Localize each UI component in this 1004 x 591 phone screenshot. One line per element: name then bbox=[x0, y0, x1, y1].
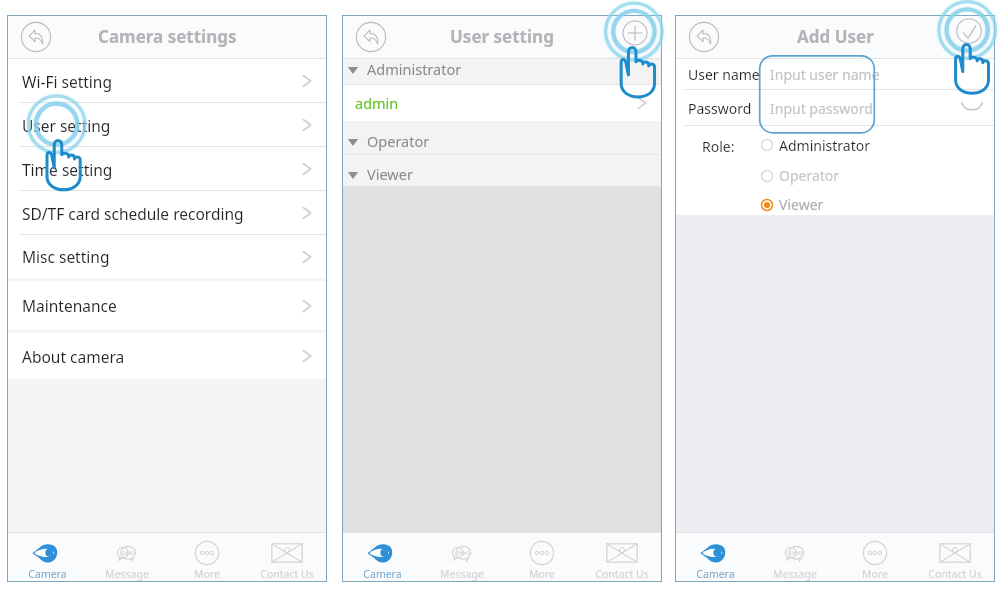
button[interactable]: Back bbox=[18, 19, 54, 55]
staticText: Administrator bbox=[367, 59, 462, 79]
button[interactable]: More bbox=[167, 533, 247, 582]
staticText: admin bbox=[355, 93, 399, 113]
staticText: Role: bbox=[702, 137, 735, 156]
staticText: Contact Us bbox=[260, 567, 314, 581]
button[interactable]: Misc setting bbox=[7, 235, 327, 278]
button[interactable]: More bbox=[502, 533, 582, 582]
staticText: Contact Us bbox=[928, 567, 982, 581]
staticText: User setting bbox=[22, 115, 111, 136]
staticText: Camera bbox=[363, 567, 402, 581]
staticText: Time setting bbox=[22, 159, 113, 180]
button[interactable]: Camera bbox=[7, 533, 87, 582]
button[interactable]: Maintenance bbox=[7, 281, 327, 330]
button[interactable]: Wi-Fi setting bbox=[7, 59, 327, 103]
button[interactable]: Message bbox=[755, 533, 835, 582]
staticText: Maintenance bbox=[22, 295, 117, 316]
staticText: Input user name bbox=[770, 65, 880, 84]
button[interactable]: Operator bbox=[760, 161, 840, 190]
staticText: Message bbox=[105, 567, 149, 581]
staticText: Input password bbox=[770, 99, 873, 118]
button[interactable]: Message bbox=[87, 533, 167, 582]
button[interactable]: Back bbox=[353, 19, 389, 55]
button[interactable]: Camera bbox=[342, 533, 422, 582]
staticText: About camera bbox=[22, 346, 125, 367]
staticText: Camera bbox=[28, 567, 67, 581]
button[interactable]: Viewer bbox=[760, 190, 824, 219]
staticText: Message bbox=[440, 567, 484, 581]
button[interactable]: Contact Us bbox=[247, 533, 327, 582]
button[interactable]: Contact Us bbox=[582, 533, 662, 582]
staticText: Camera settings bbox=[98, 25, 237, 48]
staticText: Viewer bbox=[367, 164, 413, 184]
button[interactable]: Add user bbox=[618, 16, 652, 50]
staticText: Camera bbox=[696, 567, 735, 581]
staticText: Wi-Fi setting bbox=[22, 71, 112, 92]
staticText: Password bbox=[688, 99, 752, 118]
button[interactable]: Viewer bbox=[342, 155, 662, 187]
button[interactable]: SD/TF card schedule recording bbox=[7, 191, 327, 235]
staticText: Misc setting bbox=[22, 246, 110, 267]
button[interactable]: Operator bbox=[342, 121, 662, 155]
button[interactable]: admin bbox=[342, 85, 662, 121]
staticText: More bbox=[529, 567, 555, 581]
staticText: Operator bbox=[779, 166, 840, 185]
staticText: Operator bbox=[367, 131, 430, 151]
staticText: User setting bbox=[450, 25, 554, 48]
staticText: Add User bbox=[797, 25, 874, 48]
button[interactable]: Back bbox=[686, 19, 722, 55]
staticText: More bbox=[194, 567, 220, 581]
staticText: Contact Us bbox=[595, 567, 649, 581]
button[interactable]: Time setting bbox=[7, 147, 327, 191]
button[interactable]: Administrator bbox=[760, 129, 870, 161]
button[interactable]: Confirm bbox=[952, 14, 986, 48]
button[interactable]: Message bbox=[422, 533, 502, 582]
button[interactable]: User setting bbox=[7, 103, 327, 147]
button[interactable]: Contact Us bbox=[915, 533, 995, 582]
button[interactable]: More bbox=[835, 533, 915, 582]
button[interactable]: Administrator bbox=[342, 59, 662, 85]
button[interactable]: About camera bbox=[7, 333, 327, 379]
staticText: More bbox=[862, 567, 888, 581]
staticText: Viewer bbox=[779, 195, 824, 214]
staticText: Administrator bbox=[779, 136, 870, 155]
staticText: SD/TF card schedule recording bbox=[22, 203, 244, 224]
staticText: User name bbox=[688, 65, 760, 84]
button[interactable]: Camera bbox=[675, 533, 755, 582]
staticText: Message bbox=[773, 567, 817, 581]
